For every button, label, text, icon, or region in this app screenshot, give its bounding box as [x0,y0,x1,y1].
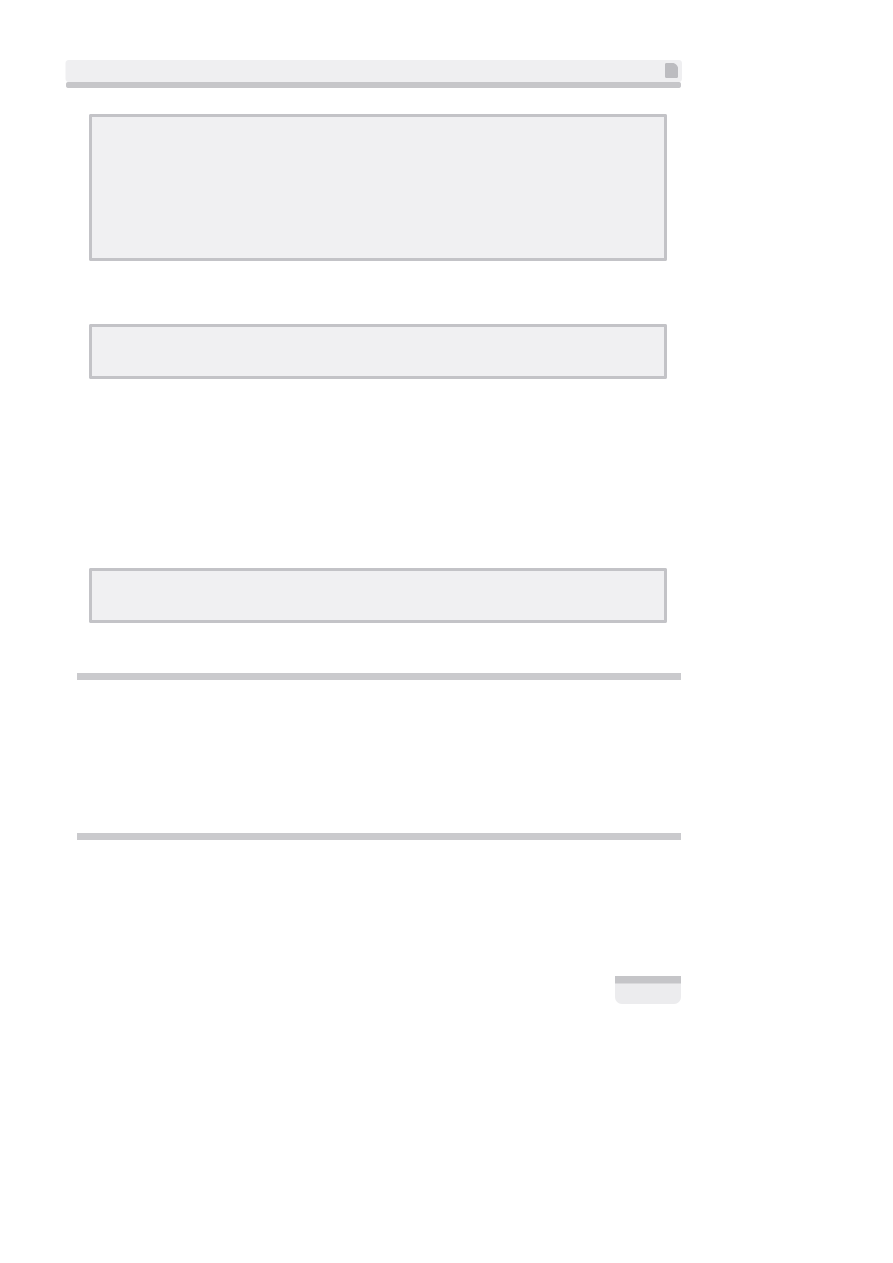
button[interactable]: Message [89,114,667,261]
button[interactable]: Submit [615,976,681,1004]
button[interactable]: Field one [89,324,667,379]
button[interactable]: Field two [89,568,667,623]
button[interactable]: Search [65,60,682,82]
